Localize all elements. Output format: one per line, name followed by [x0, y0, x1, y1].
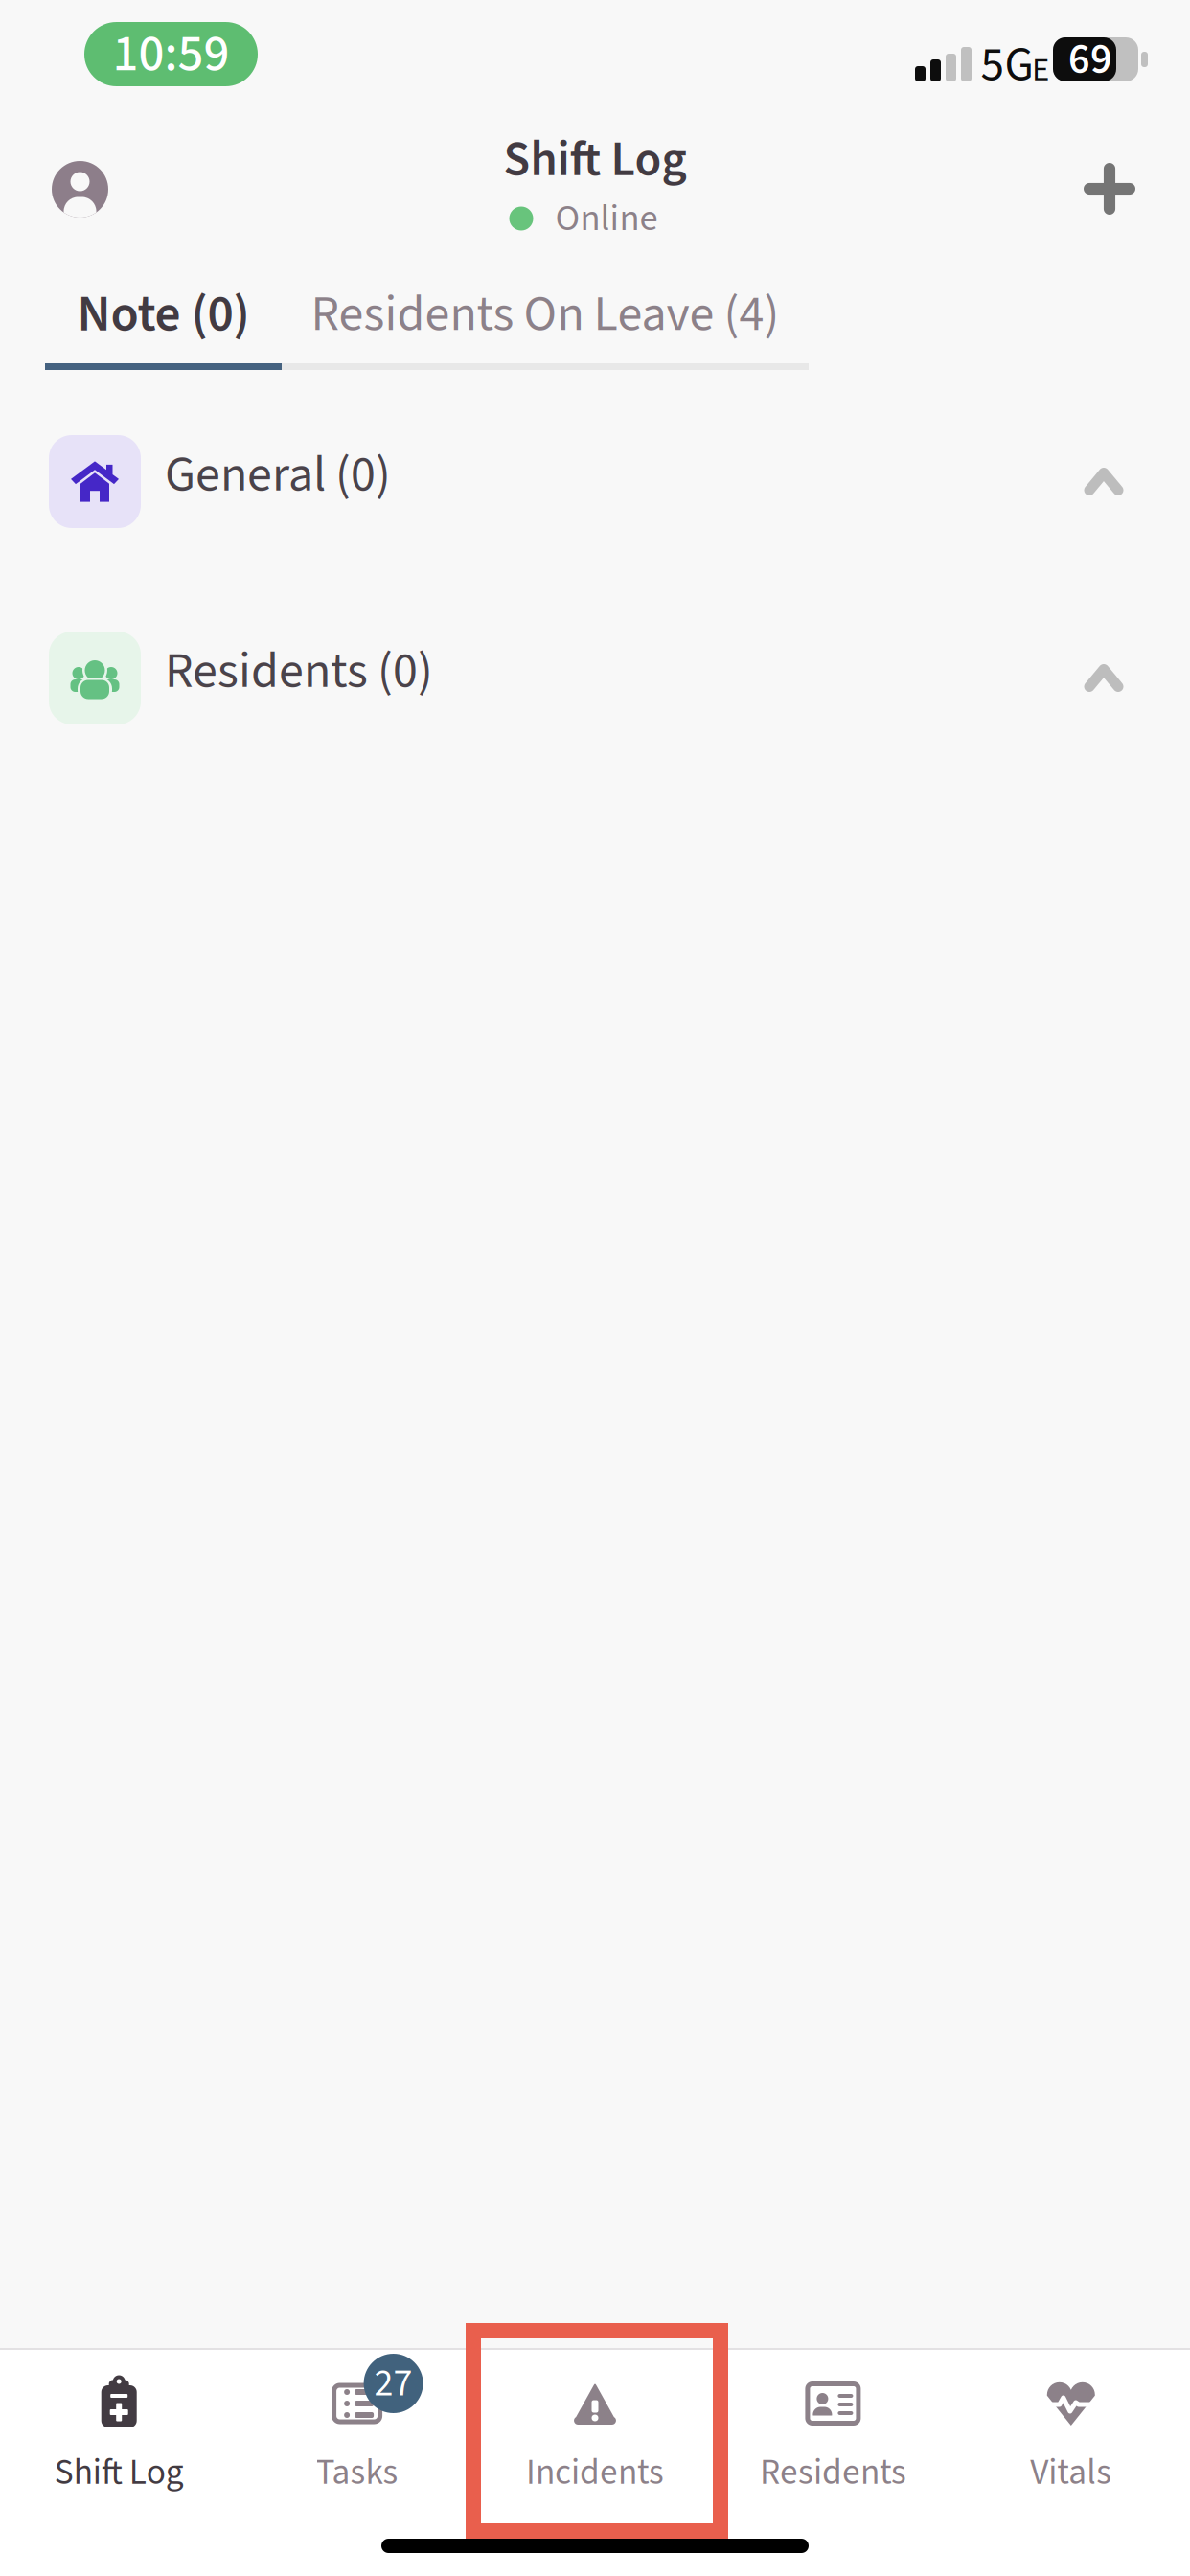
staticText: Residents [760, 2447, 906, 2498]
button[interactable]: Residents (0) [0, 580, 1190, 776]
button[interactable]: General (0) [0, 385, 1190, 578]
button[interactable]: Incidents [476, 2350, 714, 2541]
staticText: 10:59 [113, 18, 229, 90]
button[interactable]: 27 [238, 2350, 476, 2541]
staticText: Residents On Leave (4) [311, 279, 779, 350]
staticText: Shift Log [54, 2447, 184, 2498]
staticText: Tasks [316, 2447, 398, 2498]
staticText: Vitals [1030, 2447, 1112, 2498]
staticText: 27 [374, 2356, 413, 2411]
staticText: E [1032, 46, 1049, 94]
button[interactable]: Vitals [952, 2350, 1190, 2541]
button[interactable]: Shift Log [0, 2350, 238, 2541]
staticText: Note (0) [77, 278, 250, 351]
staticText: Residents (0) [165, 636, 433, 707]
button[interactable]: Add [1060, 139, 1159, 239]
staticText: Incidents [526, 2447, 664, 2498]
staticText: 5G [981, 32, 1033, 99]
staticText: 69 [1068, 29, 1112, 90]
button[interactable]: Note (0) [45, 273, 282, 356]
staticText: General (0) [165, 439, 391, 510]
button[interactable]: Residents On Leave (4) [282, 273, 809, 356]
staticText: Shift Log [503, 125, 687, 195]
button[interactable]: Profile [52, 161, 108, 218]
button[interactable]: Residents [714, 2350, 952, 2541]
staticText: Online [555, 192, 658, 245]
